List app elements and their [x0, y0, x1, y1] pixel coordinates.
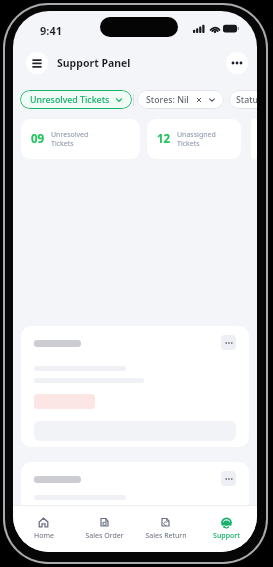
button[interactable]: Unresolved Tickets	[20, 90, 132, 109]
staticText: Support	[213, 531, 240, 541]
staticText: Unresolved Tickets	[51, 130, 89, 148]
button[interactable]: Support	[196, 506, 257, 552]
staticText: 12	[157, 131, 171, 147]
button[interactable]: 09	[21, 119, 140, 159]
staticText: Home	[34, 531, 54, 541]
button[interactable]: Status: Nil	[229, 90, 257, 109]
button[interactable]	[21, 326, 249, 447]
button[interactable]: Home	[13, 506, 74, 552]
staticText: Sales Order	[85, 531, 124, 541]
button[interactable]: Stores: Nil	[137, 90, 224, 109]
staticText: Stores: Nil	[146, 94, 189, 106]
staticText: Support Panel	[57, 56, 131, 70]
button[interactable]: Sales Order	[74, 506, 135, 552]
button[interactable]	[26, 52, 48, 74]
staticText: 09	[31, 131, 45, 147]
button[interactable]	[226, 52, 248, 74]
staticText: Unassigned Tickets	[177, 130, 216, 148]
button[interactable]	[221, 335, 236, 350]
button[interactable]	[21, 462, 249, 548]
staticText: Status: Nil	[236, 94, 257, 106]
button[interactable]: Sales Return	[135, 506, 196, 552]
button[interactable]	[221, 471, 236, 486]
button[interactable]: 12	[147, 119, 241, 159]
staticText: 9:41	[40, 23, 62, 38]
staticText: Sales Return	[145, 531, 187, 541]
staticText: Unresolved Tickets	[30, 94, 110, 106]
